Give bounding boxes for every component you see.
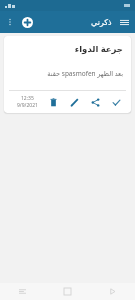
button[interactable]: Menu [117,15,131,29]
button[interactable]: Home [45,283,90,300]
button[interactable]: جرعة الدواء [4,36,131,113]
button[interactable]: More options [3,15,17,29]
staticText: حقنة spasmofen بعد الظهر [12,69,123,78]
button[interactable]: Back [90,283,135,300]
staticText: جرعة الدواء [4,43,123,55]
staticText: 12:35 [21,95,34,102]
button[interactable]: Done [109,95,124,110]
staticText: 9/9/2021 [17,102,38,109]
button[interactable]: Share [88,95,103,110]
button[interactable]: Delete [46,95,61,110]
staticText: ذكرني [91,18,112,27]
button[interactable]: Recent apps [0,283,45,300]
button[interactable]: Edit [67,95,82,110]
button[interactable]: Add reminder [19,14,35,30]
